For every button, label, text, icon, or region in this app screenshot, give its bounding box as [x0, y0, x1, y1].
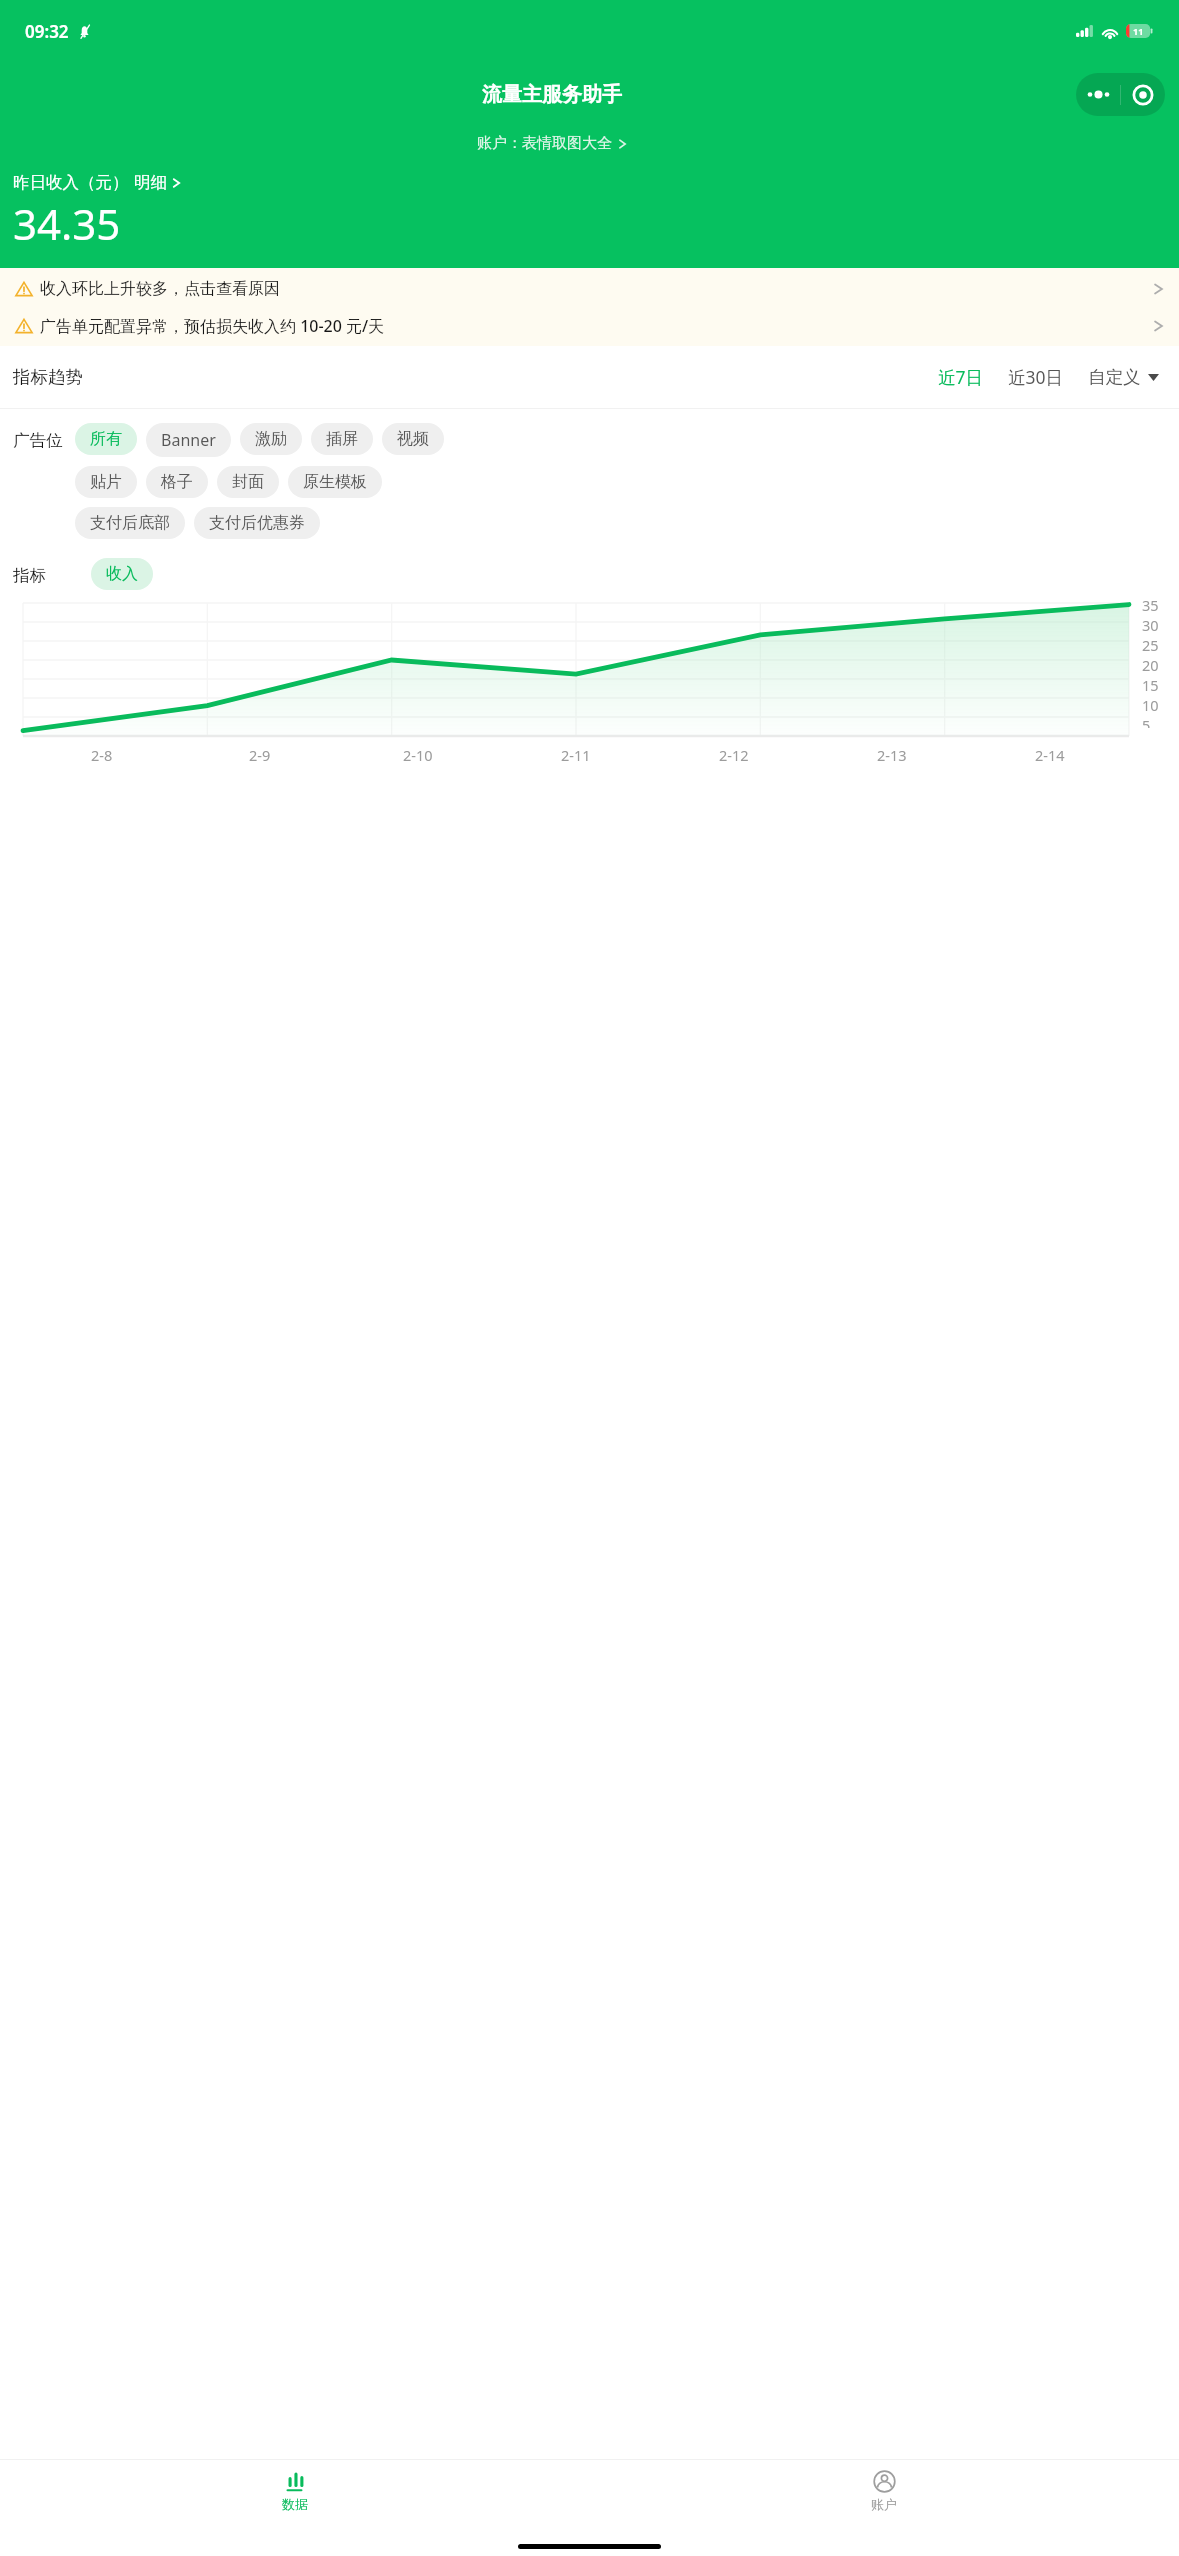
staticText: 2-13 — [877, 745, 907, 765]
staticText: 15 — [1142, 675, 1159, 695]
staticText: 所有 — [90, 429, 122, 449]
staticText: 09:32 — [25, 20, 69, 43]
button[interactable]: 视频 — [382, 423, 444, 455]
staticText: 20 — [1142, 655, 1159, 675]
button[interactable]: 支付后优惠券 — [194, 507, 320, 539]
staticText: 支付后底部 — [90, 513, 170, 533]
button[interactable]: 收入 — [91, 558, 153, 590]
button[interactable]: 自定义 — [1081, 359, 1166, 395]
staticText: 近30日 — [1008, 365, 1064, 389]
staticText: 广告单元配置异常，预估损失收入约 10-20 元/天 — [40, 315, 1154, 337]
staticText: 自定义 — [1088, 366, 1141, 388]
staticText: 近7日 — [938, 365, 984, 389]
button[interactable]: More options — [1076, 73, 1120, 116]
staticText: 流量主服务助手 — [482, 82, 622, 107]
staticText: 10 — [1142, 695, 1159, 715]
button[interactable]: 明细 — [134, 172, 180, 193]
staticText: 34.35 — [13, 195, 121, 252]
staticText: 2-10 — [403, 745, 433, 765]
button[interactable]: 原生模板 — [288, 466, 382, 498]
staticText: 收入 — [106, 564, 138, 584]
staticText: 指标趋势 — [13, 366, 83, 388]
button[interactable]: 所有 — [75, 423, 137, 455]
button[interactable]: 广告单元配置异常，预估损失收入约 10-20 元/天 — [0, 307, 1179, 344]
button[interactable]: 数据 — [0, 2460, 589, 2522]
staticText: 原生模板 — [303, 472, 367, 492]
staticText: 昨日收入（元） — [13, 172, 129, 193]
staticText: 收入环比上升较多，点击查看原因 — [40, 279, 1154, 299]
staticText: 插屏 — [326, 429, 358, 449]
staticText: 2-9 — [249, 745, 271, 765]
button[interactable]: 账户：表情取图大全 — [477, 134, 626, 153]
staticText: 25 — [1142, 635, 1159, 655]
staticText: 广告位 — [13, 430, 63, 451]
staticText: 2-12 — [719, 745, 749, 765]
staticText: 指标 — [13, 565, 46, 586]
button[interactable]: 收入环比上升较多，点击查看原因 — [0, 270, 1179, 307]
button[interactable]: 插屏 — [311, 423, 373, 455]
staticText: 5 — [1142, 715, 1151, 728]
staticText: 2-11 — [561, 745, 591, 765]
staticText: 支付后优惠券 — [209, 513, 305, 533]
staticText: 视频 — [397, 429, 429, 449]
button[interactable]: 近7日 — [931, 358, 991, 396]
staticText: 数据 — [282, 2496, 308, 2512]
button[interactable]: 近30日 — [1001, 358, 1071, 396]
staticText: 2-14 — [1035, 745, 1065, 765]
staticText: 封面 — [232, 472, 264, 492]
staticText: 30 — [1142, 615, 1159, 635]
staticText: Banner — [161, 429, 216, 451]
staticText: 激励 — [255, 429, 287, 449]
staticText: 2-8 — [91, 745, 113, 765]
staticText: 格子 — [161, 472, 193, 492]
staticText: 11 — [1133, 25, 1144, 37]
button[interactable]: Banner — [146, 423, 231, 457]
button[interactable]: 贴片 — [75, 466, 137, 498]
button[interactable]: 账户 — [589, 2460, 1179, 2522]
button[interactable]: Mini program capsule — [1121, 73, 1165, 116]
staticText: 35 — [1142, 595, 1159, 615]
staticText: 明细 — [134, 172, 167, 193]
staticText: 账户：表情取图大全 — [477, 134, 612, 153]
button[interactable]: 激励 — [240, 423, 302, 455]
button[interactable]: 格子 — [146, 466, 208, 498]
staticText: 账户 — [871, 2496, 897, 2512]
staticText: 贴片 — [90, 472, 122, 492]
button[interactable]: 支付后底部 — [75, 507, 185, 539]
button[interactable]: 封面 — [217, 466, 279, 498]
